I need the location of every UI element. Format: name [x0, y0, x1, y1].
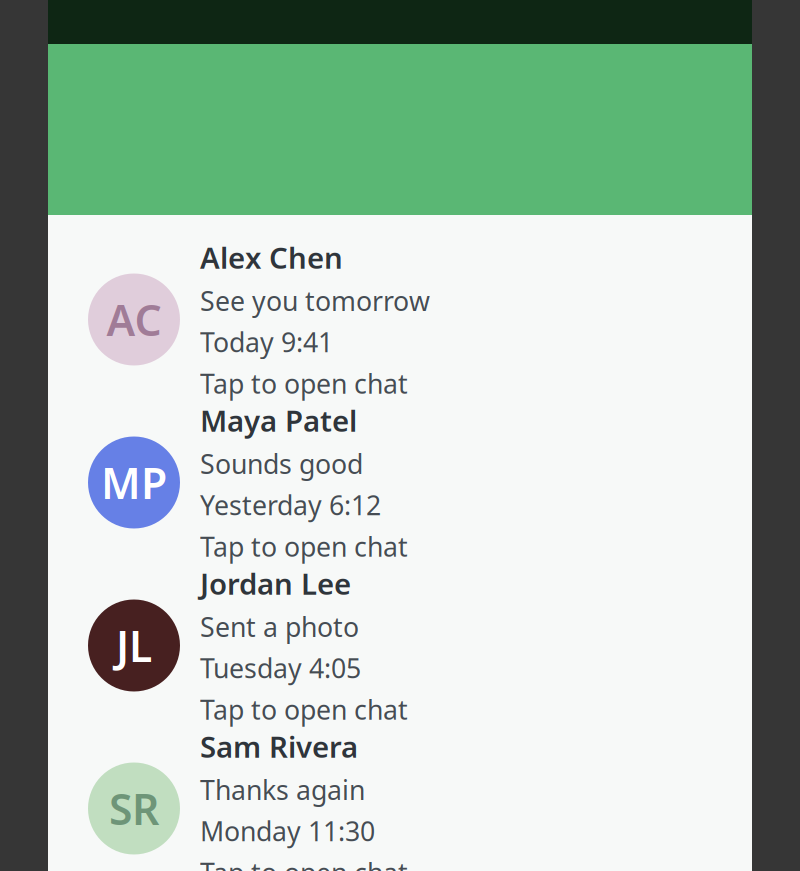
staticText: Monday 11:30 — [200, 813, 375, 849]
staticText: Sounds good — [200, 446, 363, 481]
staticText: AC — [106, 291, 161, 348]
staticText: Jordan Lee — [200, 564, 351, 603]
staticText: Sam Rivera — [200, 727, 358, 766]
staticText: Tuesday 4:05 — [200, 650, 361, 686]
staticText: Sent a photo — [200, 609, 359, 644]
staticText: Maya Patel — [200, 401, 357, 440]
staticText: Tap to open chat — [200, 366, 408, 401]
button[interactable]: AC — [48, 238, 752, 401]
staticText: JL — [116, 617, 152, 674]
staticText: SR — [109, 780, 159, 837]
staticText: Today 9:41 — [200, 324, 333, 360]
staticText: Thanks again — [200, 772, 365, 807]
staticText: MP — [101, 454, 167, 511]
staticText: Tap to open chat — [200, 529, 408, 564]
staticText: Yesterday 6:12 — [200, 487, 381, 523]
button[interactable]: SR — [48, 727, 752, 871]
staticText: Alex Chen — [200, 238, 343, 277]
button[interactable]: JL — [48, 564, 752, 727]
staticText: Tap to open chat — [200, 692, 408, 727]
button[interactable]: MP — [48, 401, 752, 564]
staticText: See you tomorrow — [200, 283, 430, 318]
staticText: Tap to open chat — [200, 855, 408, 871]
